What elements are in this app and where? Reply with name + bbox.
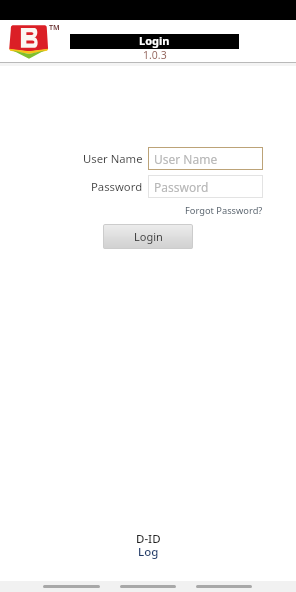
staticText: TM: [49, 23, 60, 33]
button[interactable]: Forgot Password?: [183, 202, 265, 219]
button[interactable]: Password: [148, 175, 263, 198]
staticText: D-ID: [136, 531, 161, 547]
staticText: Login: [134, 229, 163, 244]
staticText: Forgot Password?: [185, 204, 263, 217]
staticText: Log: [138, 544, 159, 560]
staticText: User Name: [83, 151, 143, 166]
staticText: Login: [139, 33, 170, 48]
staticText: 1.0.3: [143, 48, 167, 62]
button[interactable]: User Name: [148, 147, 263, 170]
button[interactable]: Recents: [196, 585, 252, 588]
staticText: Password: [154, 179, 209, 195]
button[interactable]: Back: [43, 585, 100, 588]
button[interactable]: Login: [103, 224, 193, 249]
button[interactable]: Home: [120, 585, 176, 588]
staticText: User Name: [154, 151, 218, 167]
button[interactable]: Log: [138, 544, 159, 560]
staticText: Password: [91, 179, 143, 194]
